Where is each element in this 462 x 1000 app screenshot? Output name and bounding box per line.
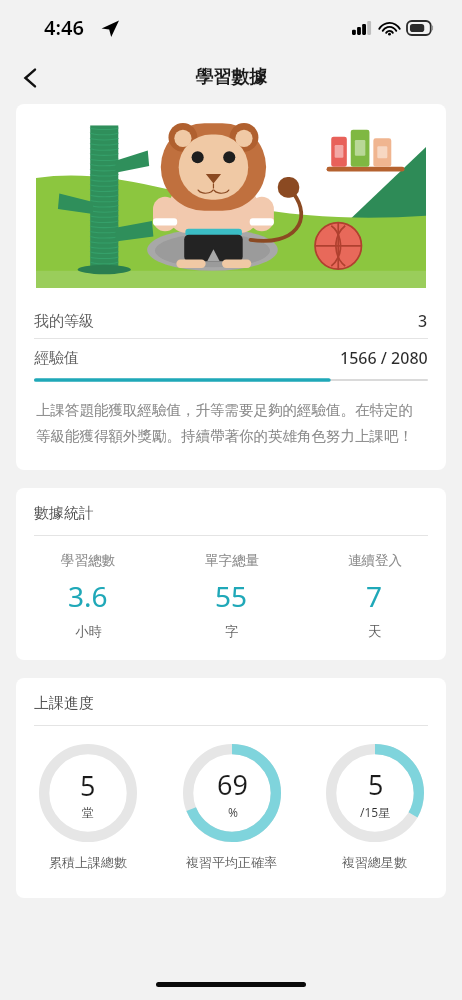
staticText: 上課答題能獲取經驗值，升等需要足夠的經驗值。在特定的等級能獲得額外獎勵。持續帶著… [36,401,426,446]
button[interactable]: Back [8,55,54,100]
staticText: 字 [225,623,239,640]
staticText: 1566 / 2080 [340,347,428,369]
button[interactable]: 69 [160,744,303,870]
staticText: 學習數據 [195,66,267,89]
staticText: % [228,804,238,820]
staticText: 複習總星數 [342,854,407,870]
staticText: 4:46 [44,14,84,41]
staticText: 複習平均正確率 [186,854,277,870]
button[interactable]: 5 [16,744,160,870]
staticText: 7 [366,577,383,615]
staticText: 單字總量 [205,552,259,569]
staticText: 5 [368,766,384,803]
button[interactable]: 經驗值 [34,339,428,377]
staticText: 連續登入 [348,552,402,569]
staticText: 小時 [75,623,102,640]
staticText: 累積上課總數 [49,854,127,870]
button[interactable]: 連續登入 [303,552,446,640]
staticText: 55 [215,577,248,615]
staticText: 數據統計 [34,504,94,523]
button[interactable]: 5 [303,744,446,870]
staticText: 上課進度 [34,694,94,713]
staticText: 學習總數 [61,552,115,569]
staticText: 5 [80,767,96,804]
staticText: 69 [217,766,248,803]
staticText: 經驗值 [34,349,79,368]
button[interactable]: 單字總量 [160,552,303,640]
staticText: 我的等級 [34,312,94,331]
button[interactable]: 我的等級 [34,304,428,338]
staticText: /15星 [360,804,391,820]
button[interactable]: 學習總數 [16,552,160,640]
staticText: 天 [368,623,382,640]
staticText: 堂 [82,805,94,820]
staticText: 3.6 [68,577,108,615]
staticText: 3 [418,310,428,332]
